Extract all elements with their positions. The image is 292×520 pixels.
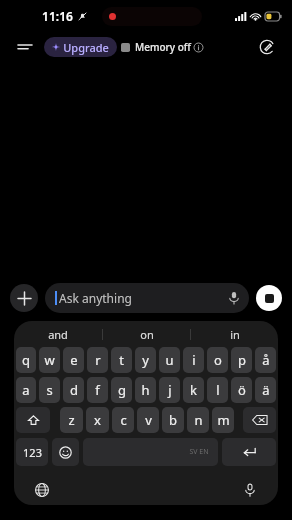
button[interactable]: s	[39, 377, 60, 403]
button[interactable]: z	[60, 407, 83, 433]
button[interactable]: Stop	[256, 285, 282, 311]
staticText: on	[140, 327, 154, 342]
button[interactable]: h	[135, 377, 156, 403]
button[interactable]: f	[87, 377, 108, 403]
staticText: d	[70, 381, 78, 399]
button[interactable]: Voice input	[227, 291, 241, 305]
button[interactable]: x	[86, 407, 109, 433]
staticText: Ask anything	[59, 290, 132, 306]
staticText: å	[262, 351, 270, 369]
button[interactable]: w	[39, 347, 60, 373]
button[interactable]: d	[63, 377, 84, 403]
button[interactable]: ä	[255, 377, 276, 403]
staticText: j	[168, 381, 172, 399]
button[interactable]: Add attachment	[10, 284, 38, 312]
button[interactable]: k	[183, 377, 204, 403]
button[interactable]: Menu	[12, 34, 38, 60]
staticText: h	[141, 381, 150, 399]
button[interactable]: c	[112, 407, 134, 433]
staticText: g	[118, 381, 126, 399]
staticText: q	[22, 351, 30, 369]
button[interactable]: q	[16, 347, 36, 373]
button[interactable]: j	[159, 377, 180, 403]
button[interactable]: Change language	[30, 478, 54, 502]
staticText: a	[22, 381, 30, 399]
staticText: r	[95, 351, 101, 369]
button[interactable]: and	[14, 321, 102, 347]
button[interactable]: r	[87, 347, 108, 373]
button[interactable]: ö	[231, 377, 252, 403]
button[interactable]: b	[162, 407, 184, 433]
staticText: ä	[262, 381, 270, 399]
button[interactable]: m	[212, 407, 234, 433]
button[interactable]: 123	[16, 438, 48, 466]
staticText: o	[214, 351, 222, 369]
button[interactable]: å	[255, 347, 276, 373]
staticText: SV EN	[189, 447, 209, 457]
button[interactable]: a	[16, 377, 36, 403]
button[interactable]: t	[111, 347, 132, 373]
staticText: x	[94, 411, 101, 429]
button[interactable]: Backspace	[243, 407, 276, 433]
staticText: z	[68, 411, 75, 429]
staticText: s	[46, 381, 53, 399]
staticText: 11:16	[42, 8, 73, 24]
button[interactable]: l	[207, 377, 228, 403]
button[interactable]: o	[207, 347, 228, 373]
button[interactable]: g	[111, 377, 132, 403]
staticText: and	[48, 327, 68, 342]
staticText: 123	[23, 445, 42, 460]
button[interactable]: New chat	[254, 34, 280, 60]
button[interactable]: i	[183, 347, 204, 373]
button[interactable]: u	[159, 347, 180, 373]
button[interactable]: p	[231, 347, 252, 373]
staticText: p	[238, 351, 246, 369]
staticText: in	[230, 327, 240, 342]
staticText: l	[216, 381, 220, 399]
staticText: k	[190, 381, 197, 399]
staticText: e	[70, 351, 78, 369]
staticText: y	[142, 351, 149, 369]
button[interactable]: Upgrade	[44, 37, 117, 57]
button[interactable]: Emoji	[52, 438, 79, 466]
staticText: v	[145, 411, 152, 429]
button[interactable]: Enter	[222, 438, 276, 466]
button[interactable]: y	[135, 347, 156, 373]
staticText: Upgrade	[63, 40, 109, 55]
staticText: i	[192, 351, 196, 369]
staticText: w	[44, 351, 55, 369]
button[interactable]: e	[63, 347, 84, 373]
button[interactable]: Shift	[16, 407, 50, 433]
button[interactable]: v	[137, 407, 159, 433]
button[interactable]: n	[187, 407, 209, 433]
button[interactable]: Memory off	[135, 40, 203, 54]
button[interactable]: Ask anything	[45, 283, 249, 313]
staticText: Memory off	[135, 40, 191, 54]
staticText: ö	[238, 381, 246, 399]
button[interactable]: Space	[83, 438, 218, 466]
staticText: c	[120, 411, 127, 429]
staticText: u	[165, 351, 174, 369]
button[interactable]: Voice typing	[238, 478, 262, 502]
button[interactable]: on	[103, 321, 190, 347]
button[interactable]: in	[191, 321, 278, 347]
staticText: f	[95, 381, 100, 399]
staticText: b	[169, 411, 177, 429]
staticText: m	[217, 411, 230, 429]
staticText: t	[119, 351, 124, 369]
staticText: n	[194, 411, 203, 429]
